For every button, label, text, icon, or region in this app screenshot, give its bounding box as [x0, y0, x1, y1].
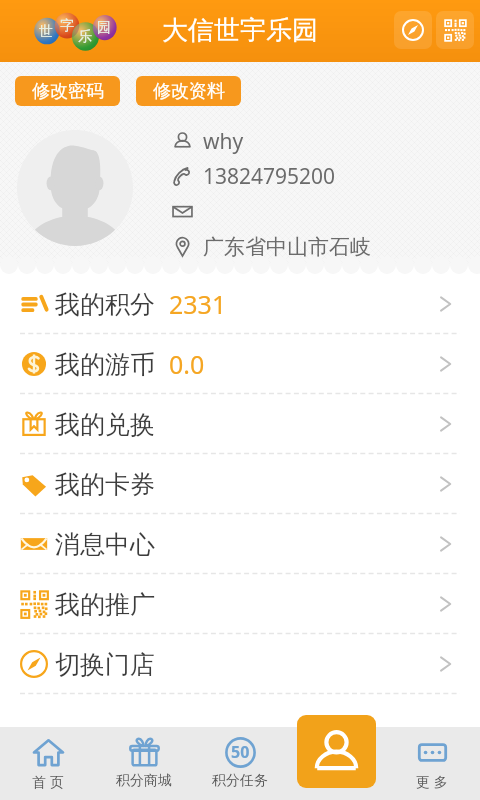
- staticText: 更 多: [416, 772, 448, 791]
- button[interactable]: 我的推广: [0, 574, 480, 634]
- staticText: 我的卡券: [55, 469, 155, 500]
- button[interactable]: 修改密码: [15, 76, 120, 106]
- staticText: 字: [60, 17, 74, 35]
- staticText: 首 页: [32, 772, 64, 791]
- staticText: 2331: [169, 287, 227, 321]
- staticText: 乐: [78, 28, 92, 46]
- button[interactable]: 切换门店: [0, 634, 480, 694]
- staticText: 切换门店: [55, 649, 155, 680]
- staticText: 大信世宇乐园: [162, 14, 318, 47]
- staticText: 我的游币: [55, 349, 155, 380]
- button[interactable]: Explore: [394, 11, 432, 49]
- button[interactable]: 积分任务: [192, 727, 288, 800]
- button[interactable]: Scan QR code: [436, 11, 474, 49]
- staticText: why: [203, 127, 244, 156]
- staticText: 修改密码: [32, 80, 104, 103]
- staticText: 我的兑换: [55, 409, 155, 440]
- staticText: 50: [231, 741, 250, 763]
- button[interactable]: 我的游币: [0, 334, 480, 394]
- button[interactable]: 我的: [297, 715, 376, 788]
- staticText: 积分任务: [212, 772, 268, 790]
- staticText: 我的积分: [55, 289, 155, 320]
- staticText: 积分商城: [116, 772, 172, 790]
- button[interactable]: 更 多: [384, 727, 480, 800]
- staticText: 园: [97, 19, 111, 37]
- button[interactable]: 修改资料: [136, 76, 241, 106]
- staticText: 修改资料: [153, 80, 225, 103]
- staticText: 消息中心: [55, 529, 155, 560]
- staticText: 世: [39, 23, 53, 41]
- staticText: 广东省中山市石岐: [203, 234, 371, 260]
- button[interactable]: 我的兑换: [0, 394, 480, 454]
- staticText: 我的推广: [55, 589, 155, 620]
- staticText: 0.0: [169, 347, 205, 381]
- button[interactable]: 积分商城: [96, 727, 192, 800]
- staticText: 13824795200: [203, 162, 336, 191]
- button[interactable]: 我的卡券: [0, 454, 480, 514]
- button[interactable]: 消息中心: [0, 514, 480, 574]
- button[interactable]: 首 页: [0, 727, 96, 800]
- button[interactable]: 我的积分: [0, 274, 480, 334]
